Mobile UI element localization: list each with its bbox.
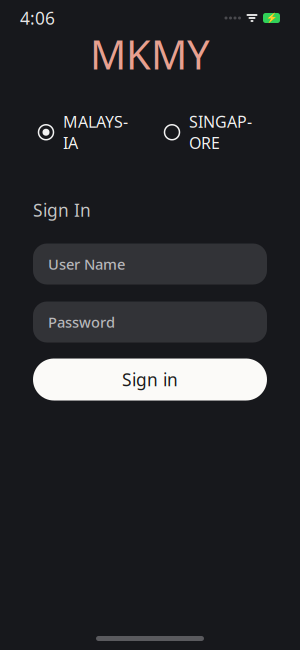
staticText: 4:06: [20, 6, 55, 29]
staticText: Password: [48, 312, 115, 332]
staticText: User Name: [48, 254, 125, 274]
staticText: ⚡: [265, 13, 277, 23]
button[interactable]: MALAYSIA: [38, 111, 128, 153]
button[interactable]: Sign in: [33, 358, 267, 400]
staticText: MKMY: [90, 27, 210, 80]
staticText: MALAYSIA: [63, 111, 128, 153]
button[interactable]: SINGAPORE: [164, 111, 252, 153]
button[interactable]: Password: [33, 301, 267, 342]
staticText: SINGAPORE: [189, 111, 252, 153]
staticText: Sign in: [122, 368, 178, 391]
button[interactable]: User Name: [33, 243, 267, 284]
staticText: Sign In: [33, 198, 91, 221]
